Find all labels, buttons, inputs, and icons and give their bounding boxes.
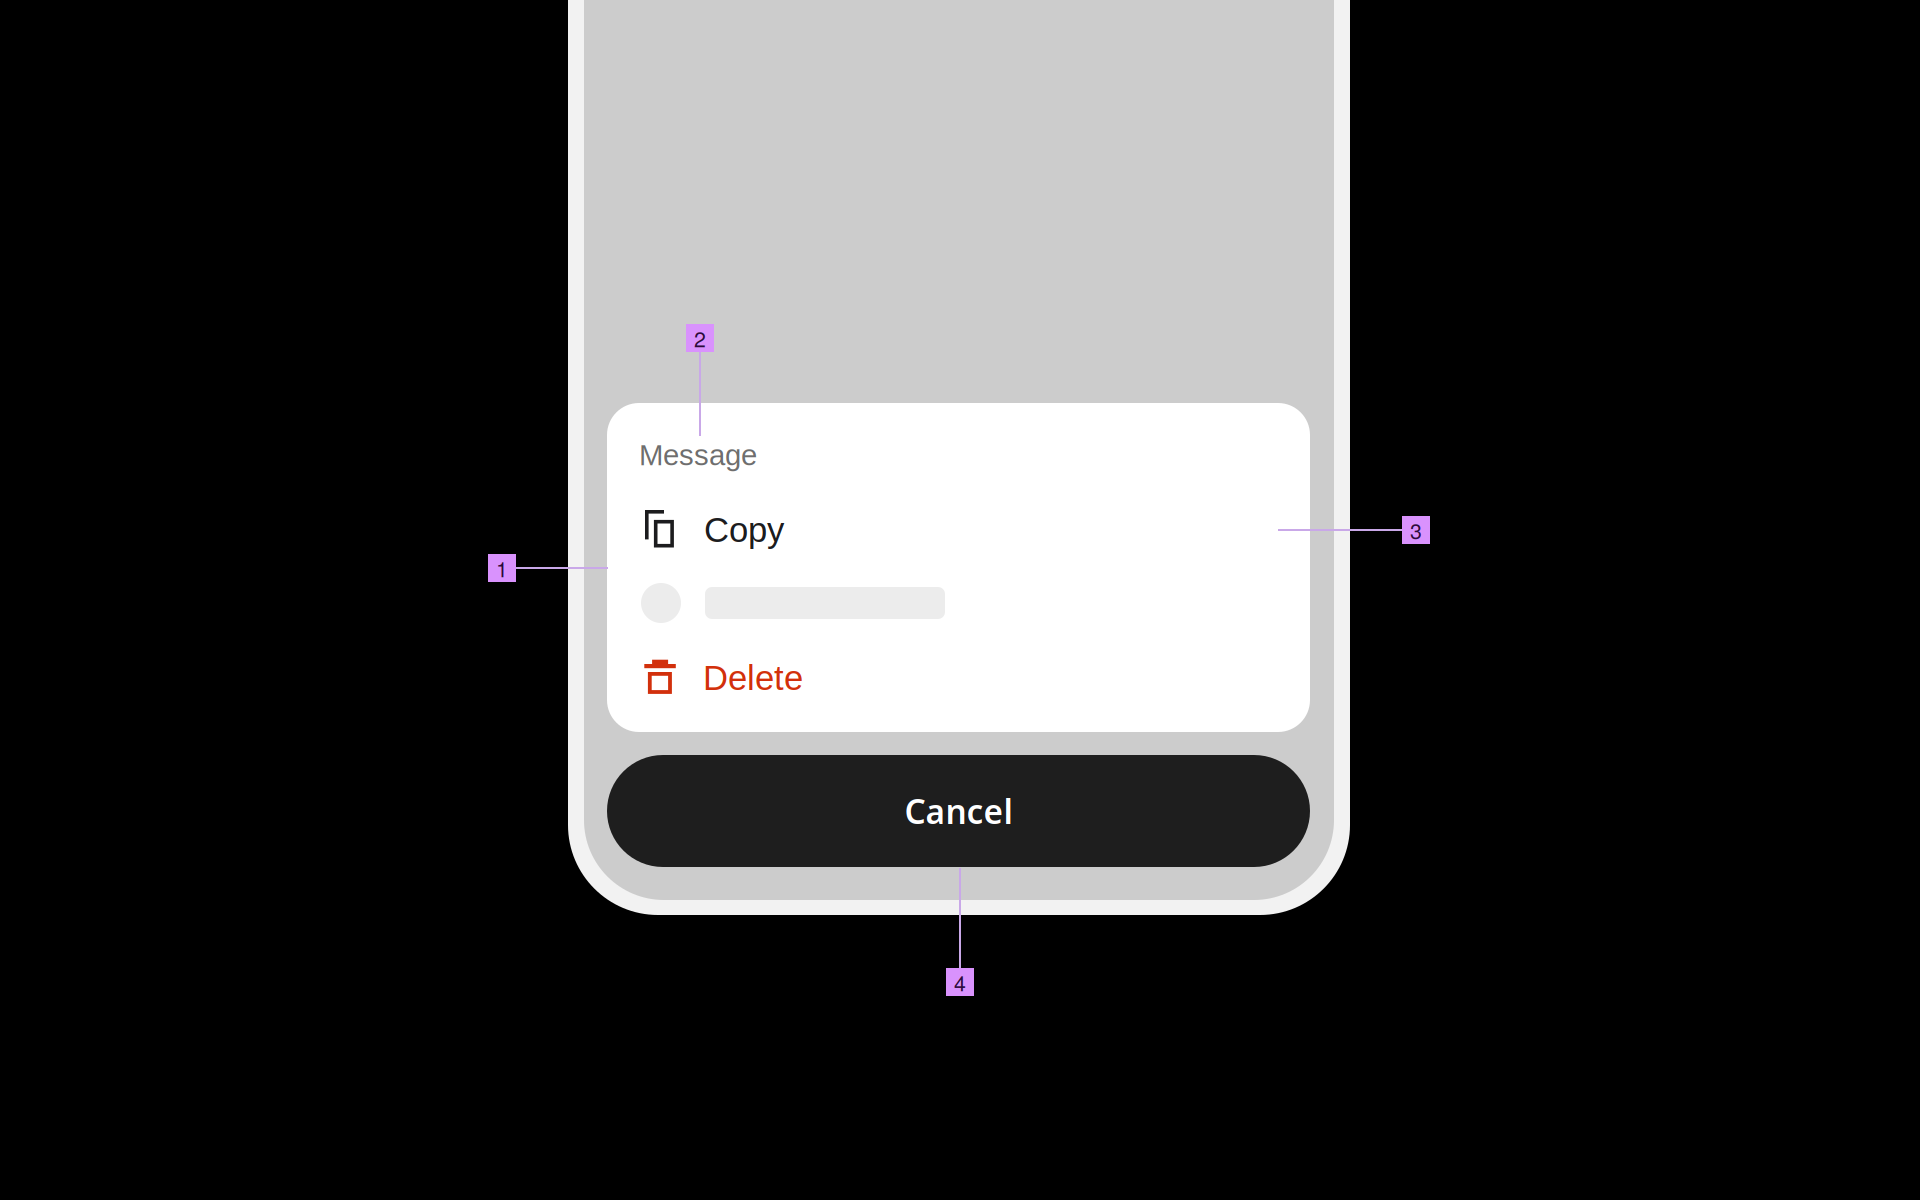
button[interactable]: Delete: [624, 647, 1293, 709]
staticText: Message: [639, 439, 757, 471]
staticText: 2: [694, 323, 706, 353]
staticText: Cancel: [904, 789, 1012, 833]
staticText: Delete: [703, 659, 803, 697]
staticText: Copy: [704, 511, 784, 549]
staticText: 3: [1410, 515, 1422, 545]
button[interactable]: Copy: [624, 499, 1293, 561]
button[interactable]: Cancel: [607, 755, 1310, 867]
staticText: 1: [496, 553, 508, 583]
staticText: 4: [954, 967, 966, 997]
